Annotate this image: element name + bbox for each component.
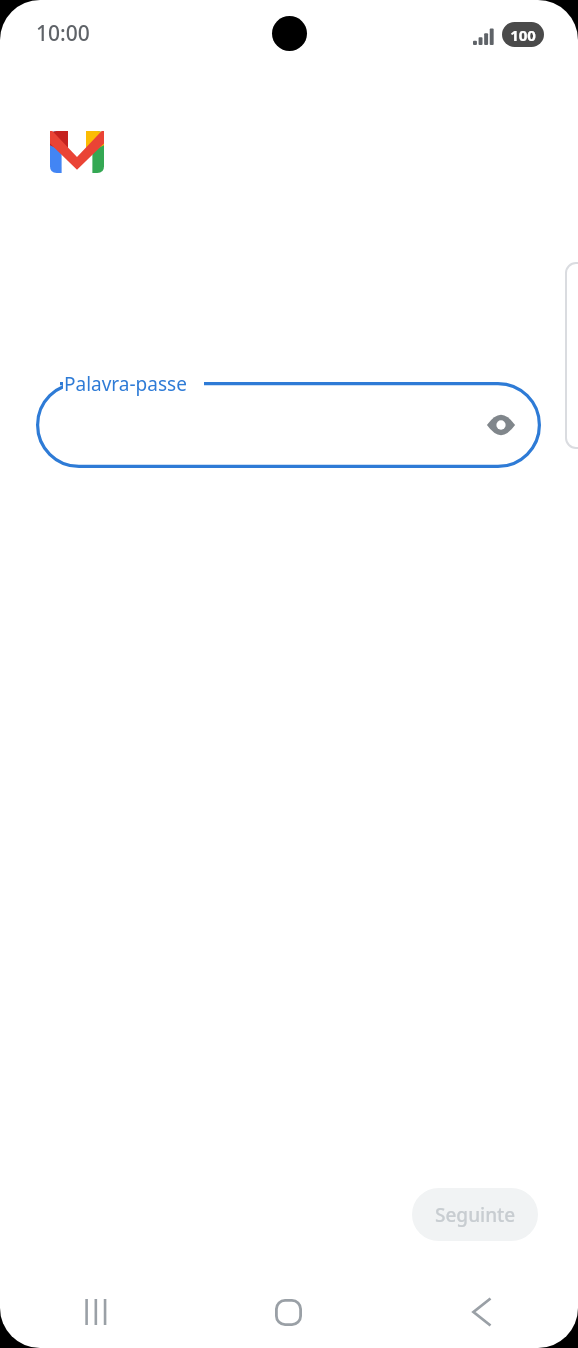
staticText: 100 xyxy=(510,25,536,45)
staticText: Seguinte xyxy=(435,1202,516,1228)
staticText: Palavra-passe xyxy=(64,371,187,397)
button[interactable]: Voltar xyxy=(385,1276,578,1348)
button[interactable]: Início xyxy=(192,1276,385,1348)
button[interactable]: Seguinte xyxy=(412,1188,538,1241)
button[interactable]: Mostrar palavra-passe xyxy=(479,403,523,447)
button[interactable]: Palavra-passe xyxy=(36,382,541,468)
button[interactable]: Recentes xyxy=(0,1276,192,1348)
staticText: 10:00 xyxy=(36,19,90,48)
